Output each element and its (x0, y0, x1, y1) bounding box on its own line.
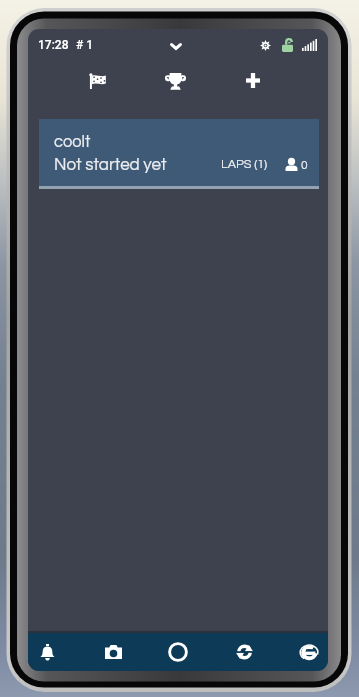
staticText: # 1 (76, 38, 94, 52)
staticText: Not started yet (54, 156, 167, 174)
button[interactable]: Races (58, 61, 136, 100)
button[interactable]: Notifications (31, 633, 63, 671)
button[interactable]: Browser (293, 633, 325, 671)
button[interactable]: Sync (228, 633, 260, 671)
button[interactable]: coolt (39, 119, 319, 186)
staticText: 17:28 (38, 38, 69, 52)
staticText: LAPS (1) (221, 158, 268, 171)
button[interactable]: Home (162, 633, 194, 671)
button[interactable]: Leaderboard (136, 61, 214, 100)
staticText: coolt (54, 133, 91, 150)
button[interactable]: Camera (97, 633, 129, 671)
staticText: 0 (301, 159, 308, 171)
button[interactable]: Add race (214, 61, 292, 100)
